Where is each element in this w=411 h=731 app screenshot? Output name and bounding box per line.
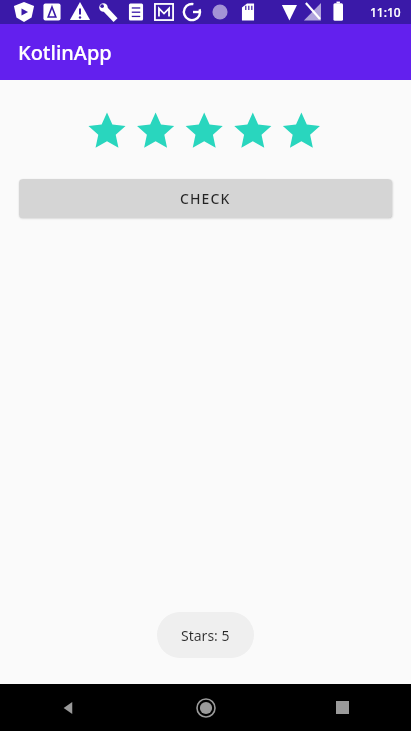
button[interactable]: Recent apps	[274, 684, 411, 731]
button[interactable]: Rate 2 stars	[137, 108, 177, 152]
button[interactable]: Home	[137, 684, 274, 731]
button[interactable]: Rate 3 stars	[186, 108, 226, 152]
button[interactable]: Back	[0, 684, 137, 731]
button[interactable]: Rate 5 stars	[284, 108, 324, 152]
button[interactable]: Rate 1 stars	[88, 108, 128, 152]
button[interactable]: Rate 4 stars	[235, 108, 275, 152]
staticText: CHECK	[180, 189, 231, 208]
button[interactable]: CHECK	[19, 179, 392, 218]
button[interactable]: Stars: 5	[157, 612, 254, 658]
staticText: 11:10	[370, 4, 401, 20]
staticText: Stars: 5	[181, 626, 230, 645]
staticText: KotlinApp	[18, 39, 112, 66]
